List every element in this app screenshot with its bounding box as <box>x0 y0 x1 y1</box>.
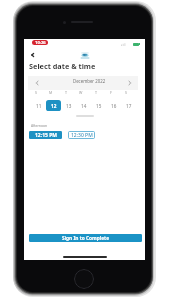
staticText: Sign In to Complete <box>62 235 110 242</box>
staticText: 16 <box>111 103 117 109</box>
button[interactable]: Sign In to Complete <box>29 234 142 242</box>
button[interactable]: 12:30 PM <box>68 131 95 139</box>
staticText: Afternoon <box>31 123 48 128</box>
button[interactable]: 11 <box>31 100 46 111</box>
staticText: Select date & time <box>29 61 96 71</box>
staticText: 14 <box>81 103 87 109</box>
button[interactable]: 15 <box>91 100 106 111</box>
staticText: December 2022 <box>73 78 106 84</box>
button[interactable]: Next month <box>125 76 135 90</box>
staticText: 10:26 <box>35 40 46 45</box>
staticText: S <box>35 90 37 95</box>
button[interactable]: Previous month <box>32 76 42 90</box>
button[interactable]: 17 <box>121 100 136 111</box>
staticText: S <box>125 90 127 95</box>
button[interactable]: 12 <box>46 100 61 111</box>
staticText: 12:15 PM <box>35 132 57 139</box>
button[interactable]: Back <box>26 49 38 61</box>
button[interactable]: 12:15 PM <box>29 131 62 139</box>
button[interactable]: 14 <box>76 100 91 111</box>
button[interactable]: 13 <box>61 100 76 111</box>
staticText: F <box>110 90 112 95</box>
staticText: 17 <box>126 103 132 109</box>
button[interactable]: 16 <box>106 100 121 111</box>
staticText: 12:30 PM <box>71 132 93 139</box>
staticText: M <box>49 90 53 95</box>
staticText: 12 <box>51 103 57 109</box>
staticText: T <box>65 90 67 95</box>
staticText: 11 <box>36 103 42 109</box>
staticText: 13 <box>66 103 72 109</box>
staticText: W <box>79 90 83 95</box>
staticText: 15 <box>96 103 102 109</box>
staticText: T <box>95 90 97 95</box>
